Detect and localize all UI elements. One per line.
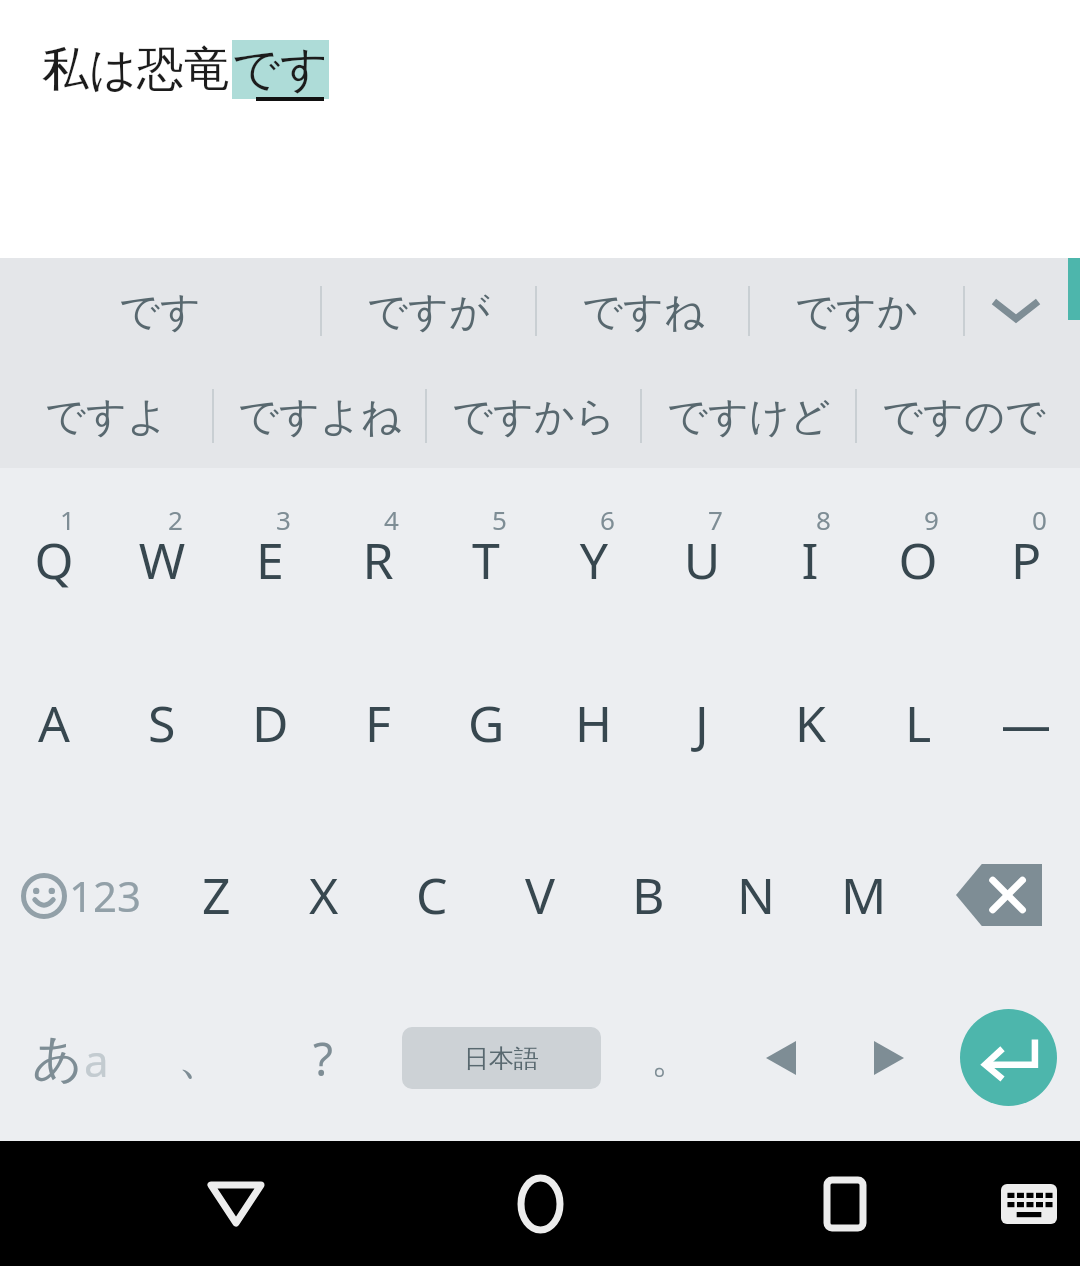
staticText: F: [365, 689, 391, 757]
button[interactable]: 0: [972, 478, 1080, 648]
button[interactable]: Change keyboard: [978, 1141, 1080, 1266]
button[interactable]: A: [0, 660, 108, 786]
button[interactable]: ?: [262, 1002, 384, 1114]
button[interactable]: ですけど: [642, 363, 855, 468]
staticText: ですよね: [238, 391, 402, 441]
button[interactable]: Symbols and emoji: [0, 840, 162, 950]
button[interactable]: 6: [540, 478, 648, 648]
button[interactable]: Switch input mode: [0, 1002, 140, 1114]
button[interactable]: 2: [108, 478, 216, 648]
button[interactable]: M: [810, 840, 918, 950]
staticText: D: [252, 689, 289, 757]
button[interactable]: Backspace: [918, 840, 1080, 950]
staticText: W: [108, 526, 216, 594]
staticText: Z: [202, 861, 231, 929]
button[interactable]: X: [270, 840, 378, 950]
button[interactable]: 5: [432, 478, 540, 648]
staticText: J: [695, 689, 709, 757]
button[interactable]: ですが: [322, 258, 535, 363]
button[interactable]: 9: [864, 478, 972, 648]
staticText: U: [648, 526, 756, 594]
button[interactable]: Z: [162, 840, 270, 950]
button[interactable]: D: [216, 660, 324, 786]
button[interactable]: 1: [0, 478, 108, 648]
button[interactable]: L: [864, 660, 972, 786]
staticText: ですから: [452, 391, 616, 441]
button[interactable]: 8: [756, 478, 864, 648]
staticText: P: [972, 526, 1080, 594]
button[interactable]: C: [378, 840, 486, 950]
staticText: E: [216, 526, 324, 594]
staticText: Q: [0, 526, 108, 594]
staticText: です: [232, 40, 329, 99]
button[interactable]: Move cursor right: [835, 1002, 943, 1114]
staticText: あ: [32, 1027, 84, 1090]
button[interactable]: S: [108, 660, 216, 786]
staticText: ですよ: [45, 391, 168, 441]
button[interactable]: 私は恐竜: [0, 0, 1080, 258]
button[interactable]: ですよ: [0, 363, 212, 468]
staticText: a: [84, 1030, 109, 1090]
button[interactable]: ですから: [427, 363, 640, 468]
staticText: 9: [924, 502, 964, 537]
staticText: 1: [60, 502, 100, 537]
staticText: I: [756, 526, 864, 594]
button[interactable]: ですよね: [214, 363, 425, 468]
button[interactable]: Recent apps: [785, 1141, 905, 1266]
button[interactable]: Enter: [960, 1009, 1057, 1106]
button[interactable]: 3: [216, 478, 324, 648]
staticText: 0: [1032, 502, 1072, 537]
staticText: B: [632, 861, 665, 929]
staticText: 5: [492, 502, 532, 537]
staticText: 日本語: [464, 1043, 539, 1074]
button[interactable]: N: [702, 840, 810, 950]
staticText: N: [737, 861, 775, 929]
staticText: ?: [313, 1027, 333, 1090]
staticText: M: [841, 861, 887, 929]
staticText: L: [905, 689, 932, 757]
staticText: です: [119, 286, 201, 336]
staticText: K: [795, 689, 826, 757]
button[interactable]: B: [594, 840, 702, 950]
staticText: Y: [540, 526, 648, 594]
staticText: ですが: [367, 286, 490, 336]
button[interactable]: J: [648, 660, 756, 786]
staticText: G: [468, 689, 505, 757]
button[interactable]: F: [324, 660, 432, 786]
staticText: 2: [168, 502, 208, 537]
staticText: 4: [384, 502, 424, 537]
staticText: X: [309, 861, 339, 929]
button[interactable]: H: [540, 660, 648, 786]
staticText: 、: [178, 1029, 224, 1087]
staticText: 3: [276, 502, 316, 537]
button[interactable]: K: [756, 660, 864, 786]
button[interactable]: です: [0, 258, 320, 363]
button[interactable]: —: [972, 660, 1080, 786]
staticText: S: [148, 689, 176, 757]
staticText: A: [38, 689, 70, 757]
button[interactable]: G: [432, 660, 540, 786]
staticText: 7: [708, 502, 748, 537]
button[interactable]: ですね: [537, 258, 750, 363]
staticText: —: [1001, 689, 1051, 757]
staticText: R: [324, 526, 432, 594]
staticText: 8: [816, 502, 856, 537]
staticText: 123: [69, 867, 142, 924]
button[interactable]: Back: [176, 1141, 296, 1266]
button[interactable]: Move cursor left: [727, 1002, 835, 1114]
button[interactable]: 。: [615, 1002, 727, 1114]
staticText: 私は恐竜: [42, 40, 232, 99]
button[interactable]: ですか: [750, 258, 963, 363]
staticText: O: [864, 526, 972, 594]
button[interactable]: ですので: [857, 363, 1070, 468]
button[interactable]: 日本語: [402, 1027, 601, 1089]
staticText: ですので: [882, 391, 1046, 441]
button[interactable]: 7: [648, 478, 756, 648]
button[interactable]: Home: [480, 1141, 600, 1266]
staticText: ですけど: [667, 391, 831, 441]
button[interactable]: Expand candidates: [963, 258, 1068, 363]
button[interactable]: V: [486, 840, 594, 950]
button[interactable]: 、: [140, 1002, 262, 1114]
staticText: T: [432, 526, 540, 594]
button[interactable]: 4: [324, 478, 432, 648]
